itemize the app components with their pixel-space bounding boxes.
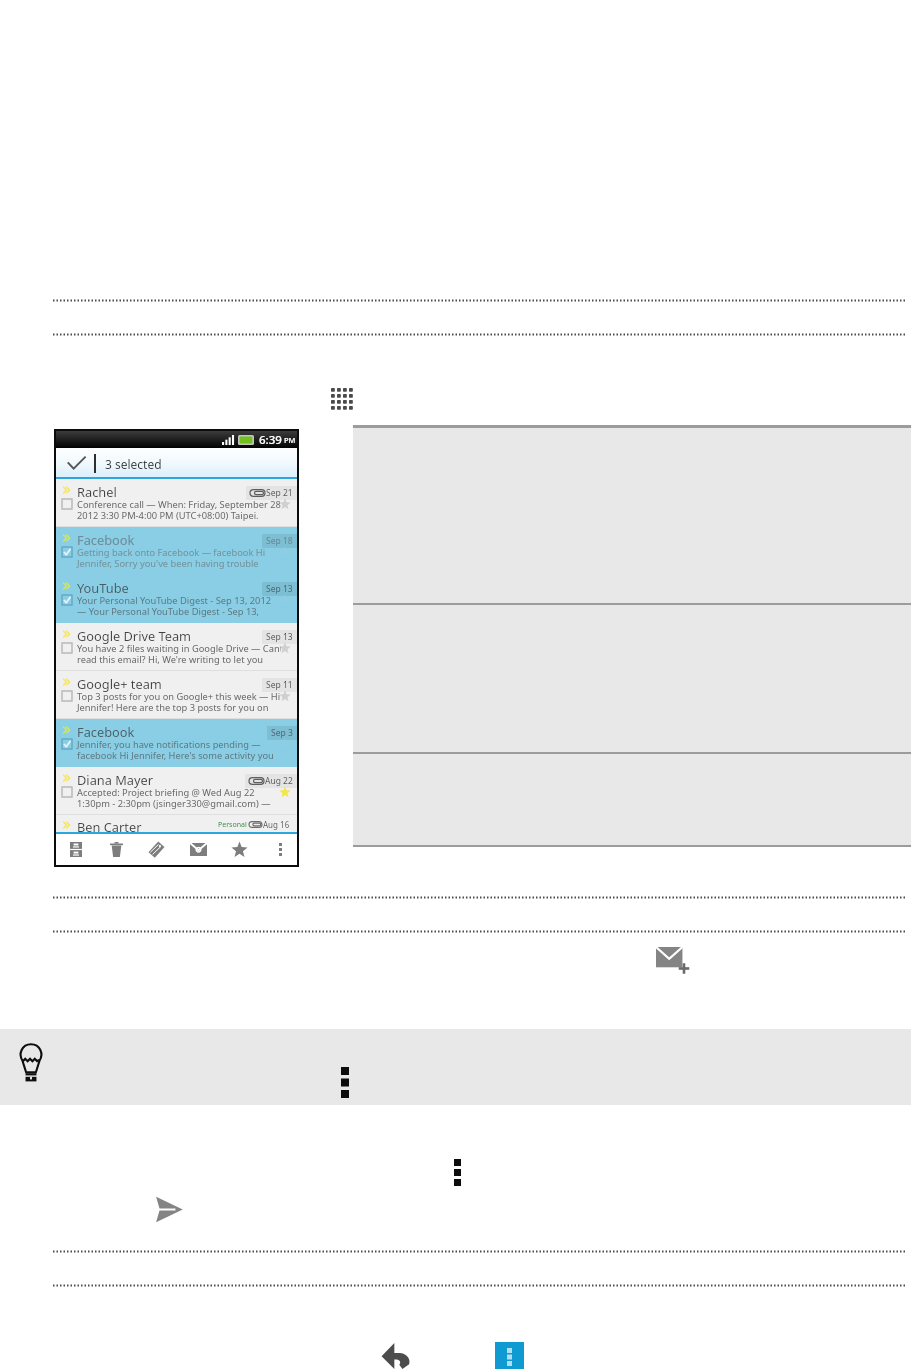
button[interactable]: More options [336,1062,354,1098]
staticText: 2012 3:30 PM-4:00 PM (UTC+08:00) Taipei. [77,509,281,522]
staticText: Jennifer, you have notifications pending… [77,738,281,751]
staticText: Sep 3 [271,727,293,739]
button[interactable]: Send [155,1196,183,1223]
staticText: Google+ team [77,675,162,692]
staticText: Jennifer! Here are the top 3 posts for y… [77,701,281,714]
staticText: Facebook [77,531,135,548]
button[interactable]: Facebook [56,527,297,575]
button[interactable]: Star [226,834,252,865]
button[interactable]: Facebook [56,719,297,767]
staticText: read this email? Hi, We're writing to le… [77,653,281,666]
staticText: Conference call — When: Friday, Septembe… [77,498,281,511]
button[interactable]: Rachel [56,479,297,527]
staticText: Sep 13 [266,583,293,595]
staticText: 6:39 [259,432,282,448]
staticText: Sep 11 [266,679,293,691]
staticText: Diana Mayer [77,771,154,788]
button[interactable]: All apps [331,388,355,412]
staticText: You have 2 files waiting in Google Drive… [77,642,281,655]
button[interactable]: YouTube [56,575,297,623]
staticText: 1:30pm - 2:30pm (jsinger330@gmail.com) — [77,797,281,810]
staticText: Sep 13 [266,631,293,643]
staticText: Jennifer, Sorry you've been having troub… [77,557,281,570]
button[interactable]: Compose mail [656,947,691,976]
button[interactable]: Label [143,834,169,865]
button[interactable]: More options [448,1153,466,1189]
button[interactable]: Mark as read [185,834,211,865]
staticText: 3 selected [105,456,162,472]
staticText: Aug 22 [265,775,293,787]
button[interactable]: Google Drive Team [56,623,297,671]
staticText: — Your Personal YouTube Digest - Sep 13, [77,605,281,618]
staticText: facebook Hi Jennifer, Here's some activi… [77,749,281,762]
button[interactable]: Diana Mayer [56,767,297,815]
staticText: Personal [218,820,247,830]
staticText: Your Personal YouTube Digest - Sep 13, 2… [77,594,281,607]
staticText: Rachel [77,483,117,500]
staticText: PM [282,435,296,445]
staticText: Sep 21 [266,487,293,499]
button[interactable]: Archive [63,834,89,865]
button[interactable]: Delete [103,834,129,865]
button[interactable]: Reply [381,1343,410,1369]
button[interactable]: More options [267,834,293,865]
staticText: Sep 18 [266,535,293,547]
staticText: Top 3 posts for you on Google+ this week… [77,690,281,703]
staticText: YouTube [77,579,129,596]
staticText: Getting back onto Facebook — facebook Hi [77,546,281,559]
staticText: Ben Carter [77,818,142,835]
staticText: Accepted: Project briefing @ Wed Aug 22 [77,786,281,799]
staticText: Google Drive Team [77,627,192,644]
button[interactable]: Google+ team [56,671,297,719]
button[interactable]: More options [495,1342,524,1369]
staticText: Aug 16 [263,819,290,830]
button[interactable]: Done [60,448,90,477]
staticText: Facebook [77,723,135,740]
